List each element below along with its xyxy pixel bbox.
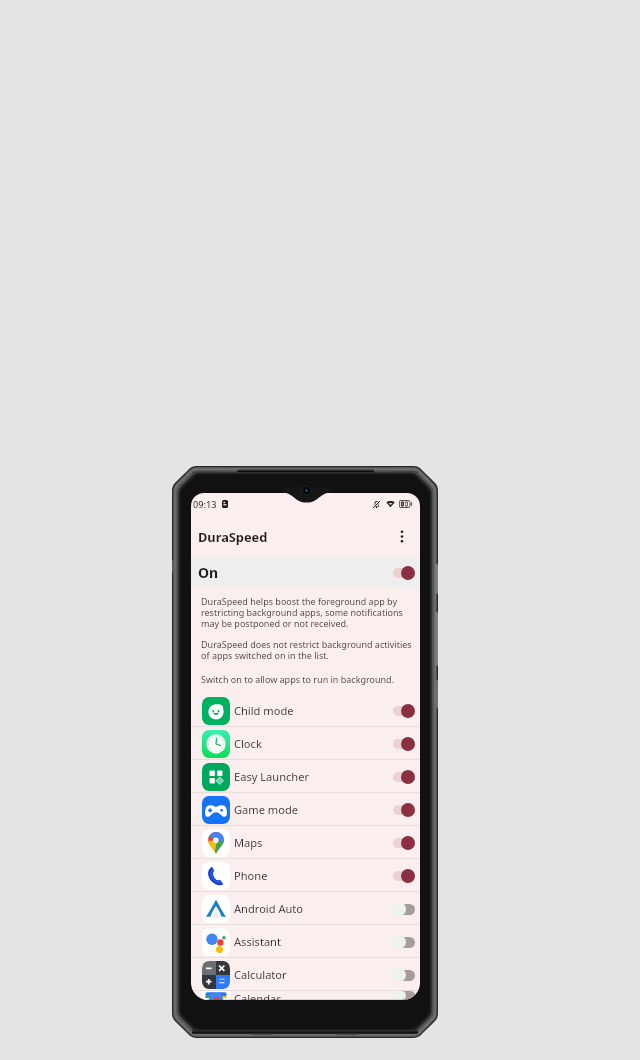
button[interactable]: Toggle on — [393, 836, 414, 850]
button[interactable]: Clock — [191, 727, 420, 760]
button[interactable]: Toggle on — [393, 869, 414, 883]
button[interactable]: Android Auto — [191, 892, 420, 925]
staticText: Game mode — [234, 802, 298, 817]
staticText: Calendar — [234, 991, 281, 1000]
staticText: DuraSpeed does not restrict background a… — [201, 638, 415, 662]
staticText: On — [198, 563, 219, 582]
button[interactable]: On — [191, 557, 420, 588]
button[interactable]: Toggle on — [393, 803, 414, 817]
button[interactable]: Toggle on — [393, 566, 414, 580]
button[interactable]: Toggle off — [393, 968, 414, 982]
staticText: Switch on to allow apps to run in backgr… — [201, 673, 395, 685]
staticText: Maps — [234, 835, 263, 850]
staticText: Easy Launcher — [234, 769, 310, 784]
button[interactable]: Toggle on — [393, 704, 414, 718]
button[interactable]: More options — [391, 525, 413, 547]
staticText: DuraSpeed helps boost the foreground app… — [201, 595, 415, 630]
button[interactable]: Toggle off — [393, 935, 414, 949]
button[interactable]: Toggle on — [393, 737, 414, 751]
button[interactable]: Toggle off — [393, 902, 414, 916]
staticText: 09:13 — [193, 498, 217, 511]
button[interactable]: Child mode — [191, 694, 420, 727]
staticText: Child mode — [234, 703, 294, 718]
staticText: Clock — [234, 736, 262, 751]
staticText: Phone — [234, 868, 268, 883]
staticText: Calculator — [234, 967, 287, 982]
button[interactable]: Phone — [191, 859, 420, 892]
button[interactable]: Easy Launcher — [191, 760, 420, 793]
button[interactable]: Toggle on — [393, 770, 414, 784]
button[interactable]: Calculator — [191, 958, 420, 991]
button[interactable]: Maps — [191, 826, 420, 859]
button[interactable]: Assistant — [191, 925, 420, 958]
button[interactable]: Game mode — [191, 793, 420, 826]
staticText: DuraSpeed — [198, 528, 268, 545]
staticText: Assistant — [234, 934, 281, 949]
button[interactable]: Calendar — [191, 991, 420, 1000]
staticText: Android Auto — [234, 901, 304, 916]
button[interactable]: Toggle off — [393, 991, 414, 1000]
